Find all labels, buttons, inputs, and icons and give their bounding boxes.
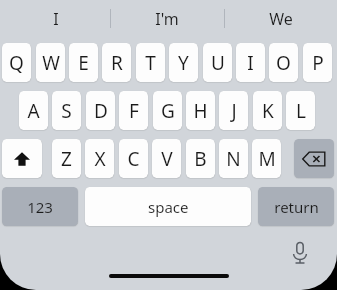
staticText: M xyxy=(258,146,276,172)
button[interactable]: H xyxy=(186,91,215,130)
staticText: D xyxy=(94,98,108,124)
staticText: Q xyxy=(9,50,24,76)
button[interactable]: D xyxy=(86,91,115,130)
button[interactable]: Z xyxy=(52,139,81,178)
button[interactable]: Dictate xyxy=(283,238,317,268)
button[interactable]: M xyxy=(252,139,281,178)
staticText: O xyxy=(276,50,291,76)
staticText: H xyxy=(193,98,208,124)
staticText: E xyxy=(78,50,89,76)
button[interactable]: J xyxy=(219,91,248,130)
staticText: G xyxy=(161,98,175,124)
staticText: Z xyxy=(61,146,72,172)
staticText: R xyxy=(111,50,123,76)
staticText: 123 xyxy=(27,197,53,217)
button[interactable]: 123 xyxy=(2,187,78,226)
button[interactable]: Q xyxy=(2,43,31,82)
button[interactable]: N xyxy=(219,139,248,178)
staticText: I xyxy=(247,50,254,76)
staticText: C xyxy=(127,146,140,172)
button[interactable]: O xyxy=(269,43,298,82)
button[interactable]: B xyxy=(186,139,215,178)
button[interactable]: We xyxy=(226,0,336,37)
button[interactable]: I'm xyxy=(112,0,222,37)
button[interactable]: W xyxy=(36,43,65,82)
staticText: We xyxy=(269,8,293,30)
button[interactable]: V xyxy=(152,139,181,178)
button[interactable]: Delete xyxy=(294,139,334,178)
staticText: P xyxy=(312,50,324,76)
staticText: N xyxy=(226,146,241,172)
button[interactable]: T xyxy=(136,43,165,82)
button[interactable]: I xyxy=(1,0,111,37)
staticText: T xyxy=(145,50,156,76)
staticText: F xyxy=(129,98,139,124)
button[interactable]: S xyxy=(52,91,81,130)
staticText: J xyxy=(231,98,237,124)
staticText: U xyxy=(211,50,225,76)
button[interactable]: F xyxy=(119,91,148,130)
staticText: A xyxy=(27,98,40,124)
button[interactable]: C xyxy=(119,139,148,178)
staticText: V xyxy=(161,146,173,172)
button[interactable]: Y xyxy=(169,43,198,82)
button[interactable]: R xyxy=(102,43,131,82)
staticText: K xyxy=(262,98,274,124)
button[interactable]: return xyxy=(258,187,334,226)
button[interactable]: P xyxy=(303,43,332,82)
button[interactable]: X xyxy=(85,139,114,178)
button[interactable]: K xyxy=(253,91,282,130)
button[interactable]: G xyxy=(153,91,182,130)
staticText: space xyxy=(148,197,189,217)
staticText: L xyxy=(296,98,306,124)
button[interactable]: E xyxy=(69,43,98,82)
staticText: I'm xyxy=(155,8,179,30)
button[interactable]: I xyxy=(236,43,265,82)
staticText: W xyxy=(42,50,60,76)
button[interactable]: Shift xyxy=(2,139,42,178)
button[interactable]: A xyxy=(19,91,48,130)
staticText: Y xyxy=(178,50,189,76)
staticText: return xyxy=(274,197,319,217)
staticText: B xyxy=(194,146,207,172)
button[interactable]: U xyxy=(203,43,232,82)
staticText: I xyxy=(53,8,59,30)
staticText: X xyxy=(94,146,106,172)
button[interactable]: L xyxy=(286,91,315,130)
staticText: S xyxy=(61,98,72,124)
button[interactable]: space xyxy=(85,187,251,226)
